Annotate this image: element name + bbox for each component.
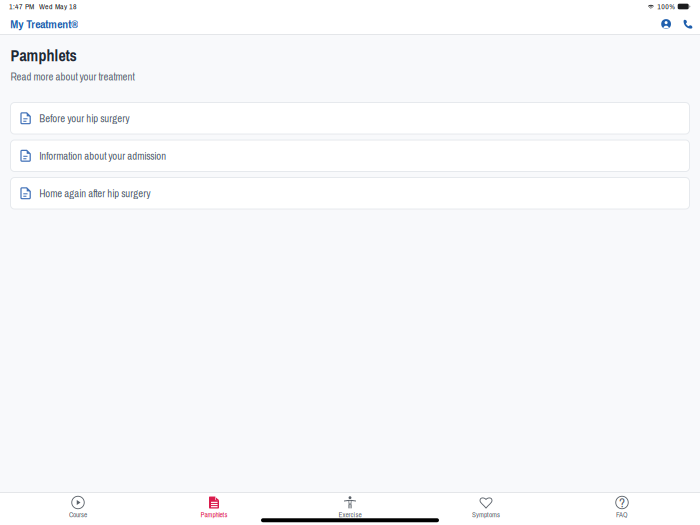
button[interactable]: Before your hip surgery xyxy=(10,102,689,134)
staticText: 100% xyxy=(657,1,675,12)
button[interactable]: Course xyxy=(10,496,146,518)
staticText: Information about your admission xyxy=(39,149,166,163)
button[interactable]: Account xyxy=(655,16,677,32)
staticText: Read more about your treatment xyxy=(10,70,134,84)
staticText: Before your hip surgery xyxy=(39,111,129,125)
staticText: Pamphlets xyxy=(200,510,227,520)
staticText: 1:47 PM xyxy=(9,1,34,12)
staticText: Symptoms xyxy=(472,510,500,520)
button[interactable]: Exercise xyxy=(282,496,418,518)
staticText: FAQ xyxy=(616,510,628,520)
staticText: My Treatment® xyxy=(10,16,78,32)
staticText: Course xyxy=(69,510,87,520)
button[interactable]: Home again after hip surgery xyxy=(10,177,689,209)
button[interactable]: Information about your admission xyxy=(10,140,689,171)
button[interactable]: Pamphlets xyxy=(146,496,282,518)
staticText: Home again after hip surgery xyxy=(39,186,150,200)
button[interactable]: ? xyxy=(554,496,690,518)
staticText: Exercise xyxy=(338,510,361,520)
staticText: Wed May 18 xyxy=(39,1,77,12)
staticText: Pamphlets xyxy=(10,45,76,66)
staticText: ? xyxy=(619,493,625,511)
button[interactable]: Call support xyxy=(677,16,694,32)
button[interactable]: Symptoms xyxy=(418,496,554,518)
